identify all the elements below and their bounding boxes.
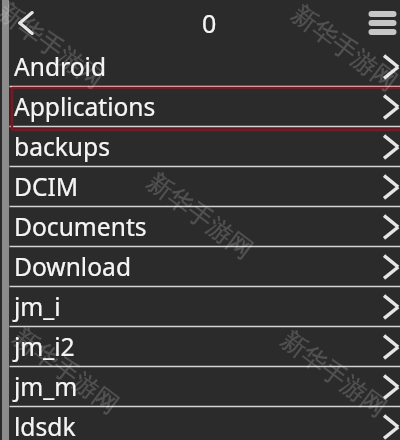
staticText: 0 [202,6,217,40]
staticText: Documents [14,210,147,244]
button[interactable]: Menu [356,1,400,45]
staticText: DCIM [14,170,79,204]
button[interactable]: Documents [0,206,400,246]
button[interactable]: Back [8,6,42,40]
button[interactable]: Applications [0,86,400,126]
button[interactable]: Download [0,246,400,286]
staticText: Applications [14,90,156,124]
button[interactable]: Android [0,46,400,86]
staticText: Download [14,250,132,284]
button[interactable]: jm_i [0,286,400,326]
staticText: Android [14,50,107,84]
button[interactable]: jm_m [0,366,400,406]
staticText: backups [14,130,110,164]
button[interactable]: backups [0,126,400,166]
staticText: jm_i [14,290,61,324]
staticText: ldsdk [14,410,76,440]
button[interactable]: jm_i2 [0,326,400,366]
staticText: jm_i2 [14,330,75,364]
staticText: jm_m [14,370,78,404]
button[interactable]: DCIM [0,166,400,206]
button[interactable]: ldsdk [0,406,400,440]
